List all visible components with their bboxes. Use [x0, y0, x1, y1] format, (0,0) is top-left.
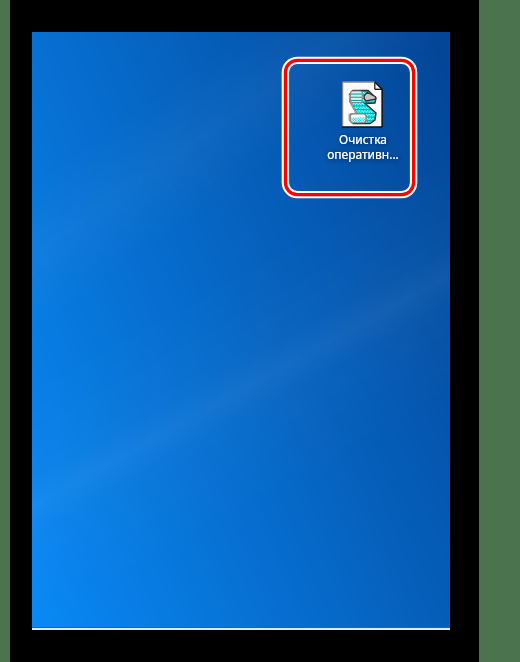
other: Выделение: [281, 56, 418, 199]
staticText: Очистка оперативн...: [327, 131, 399, 162]
other: Значок сценария VBScript: [303, 80, 423, 166]
button[interactable]: Значок сценария VBScript: [303, 80, 423, 166]
